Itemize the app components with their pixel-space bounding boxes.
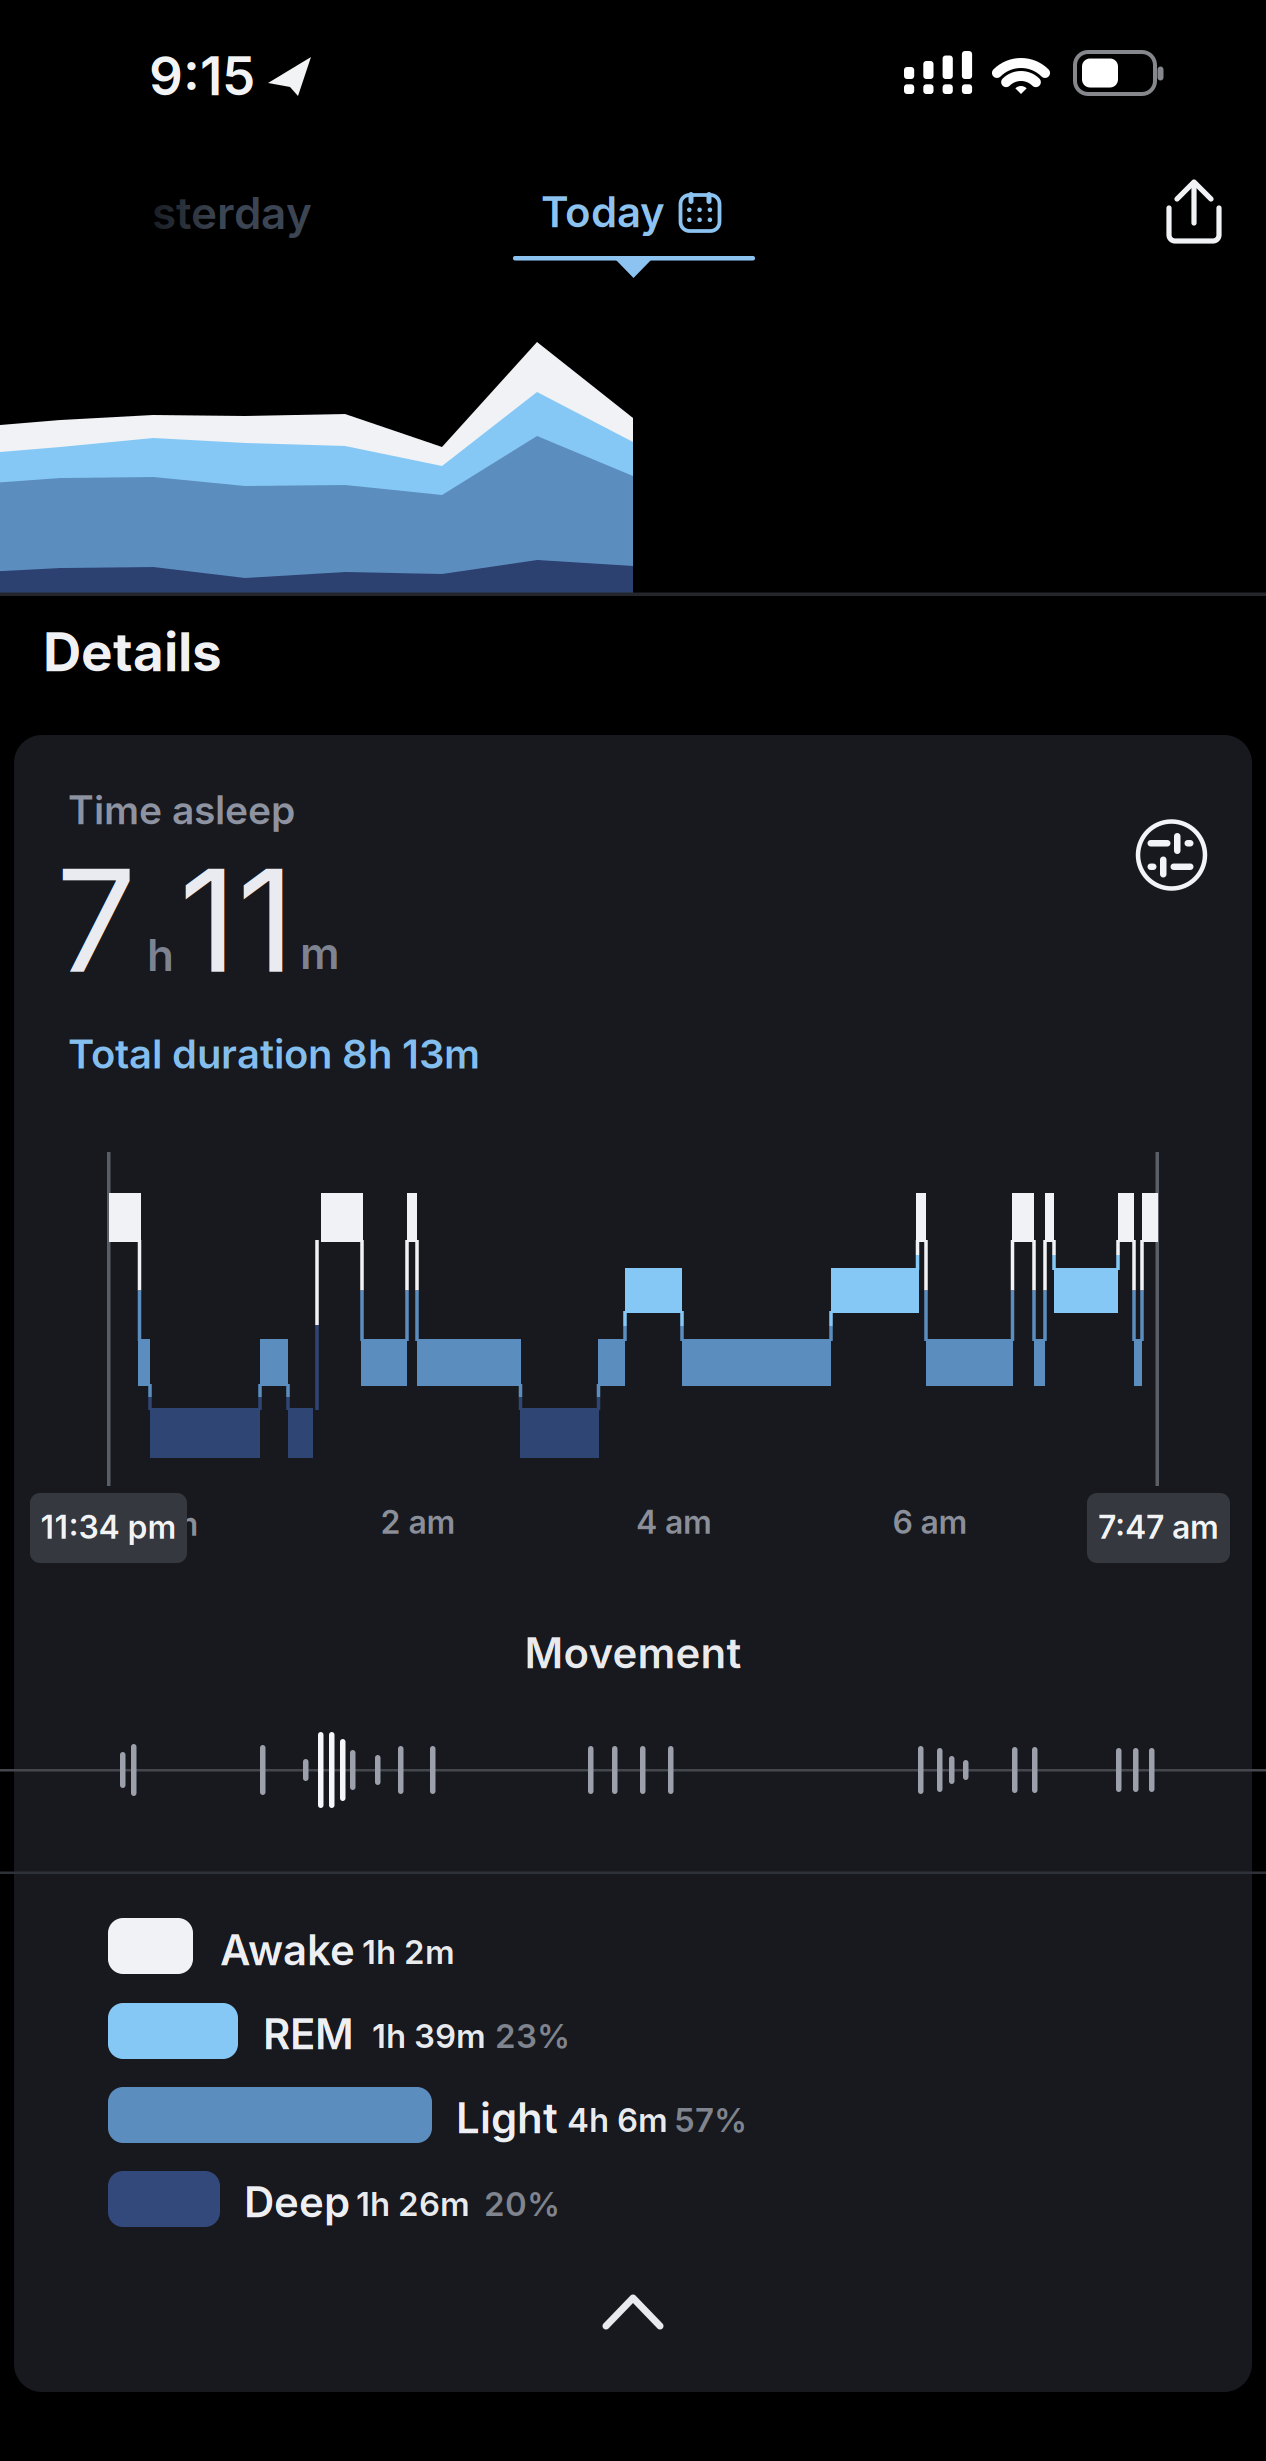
staticText: 23%: [495, 2016, 570, 2055]
staticText: 7:47 am: [1098, 1508, 1219, 1546]
staticText: Details: [43, 621, 222, 683]
staticText: 7: [56, 836, 136, 1004]
button[interactable]: Adjust sleep time: [1133, 817, 1209, 893]
staticText: 1h 2m: [362, 1932, 455, 1971]
staticText: Light: [456, 2093, 558, 2143]
staticText: Today: [541, 187, 665, 237]
button[interactable]: Share: [1166, 178, 1226, 244]
staticText: 11: [179, 836, 295, 1004]
staticText: 6 am: [892, 1503, 967, 1541]
staticText: 1h 26m: [356, 2184, 470, 2223]
staticText: REM: [263, 2009, 354, 2059]
button[interactable]: Collapse details: [601, 2294, 665, 2330]
staticText: 57%: [674, 2100, 747, 2139]
staticText: sterday: [152, 187, 312, 239]
staticText: Movement: [524, 1628, 741, 1678]
staticText: Awake: [220, 1925, 355, 1975]
staticText: 4h 6m: [567, 2100, 668, 2139]
button[interactable]: Yesterday: [72, 168, 392, 258]
button[interactable]: Today, open calendar: [544, 183, 720, 241]
staticText: 1h 39m: [372, 2016, 486, 2055]
staticText: Deep: [244, 2177, 350, 2227]
staticText: 2 am: [380, 1503, 455, 1541]
staticText: 9:15: [149, 45, 255, 107]
staticText: Time asleep: [68, 787, 295, 833]
staticText: m: [169, 1505, 198, 1543]
staticText: 11:34 pm: [40, 1508, 176, 1546]
staticText: m: [300, 927, 340, 979]
staticText: 4 am: [636, 1503, 712, 1541]
staticText: h: [147, 929, 174, 981]
staticText: 20%: [484, 2184, 560, 2223]
staticText: Total duration 8h 13m: [68, 1030, 480, 1078]
